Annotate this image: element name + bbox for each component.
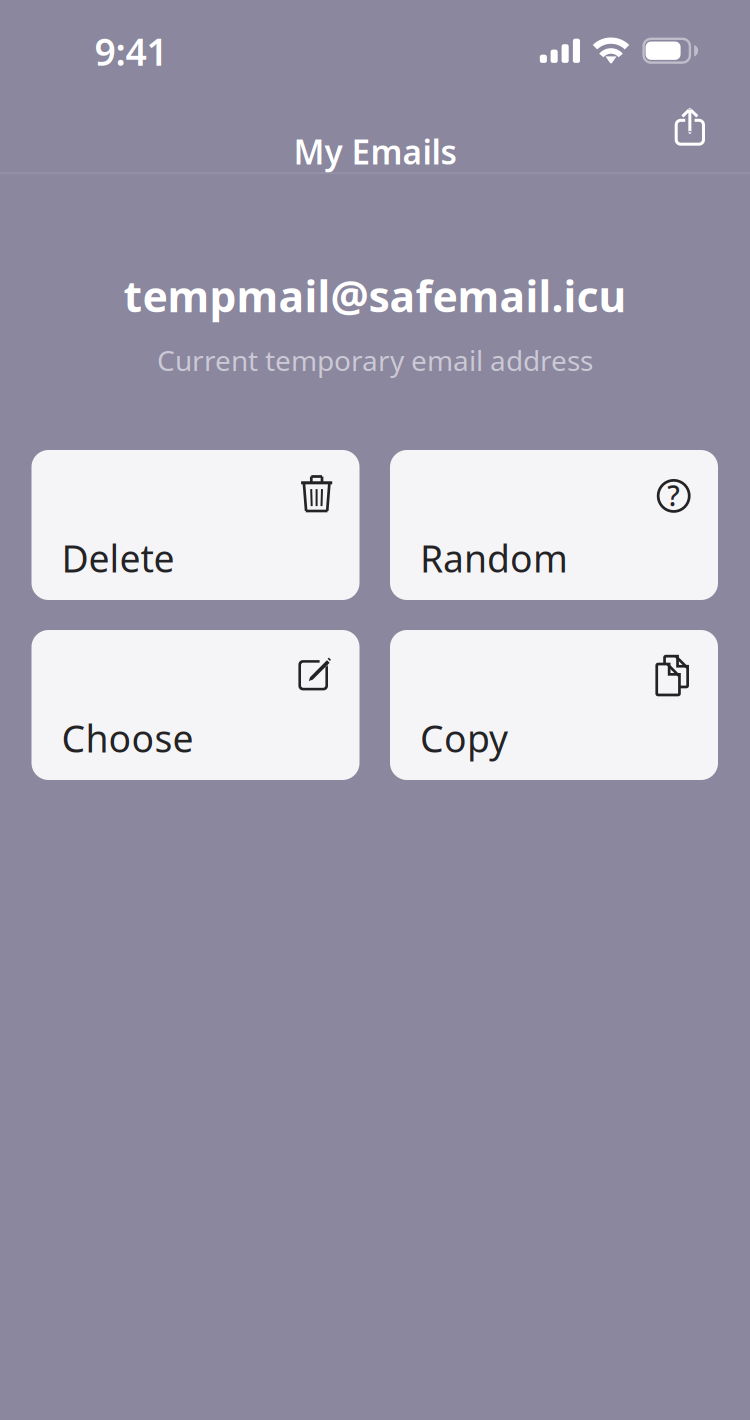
staticText: ? — [667, 477, 680, 514]
staticText: Copy — [420, 713, 508, 763]
staticText: Delete — [61, 533, 174, 583]
button[interactable]: Delete — [31, 450, 359, 600]
staticText: Choose — [61, 713, 193, 763]
button[interactable]: Share — [659, 91, 721, 162]
button[interactable]: Choose — [31, 630, 359, 780]
staticText: Current temporary email address — [157, 342, 593, 379]
staticText: My Emails — [293, 129, 456, 174]
staticText: Random — [420, 533, 568, 583]
button[interactable]: Copy — [390, 630, 718, 780]
button[interactable]: ? — [390, 450, 718, 600]
staticText: tempmail@safemail.icu — [123, 267, 626, 324]
staticText: 9:41 — [94, 26, 167, 76]
